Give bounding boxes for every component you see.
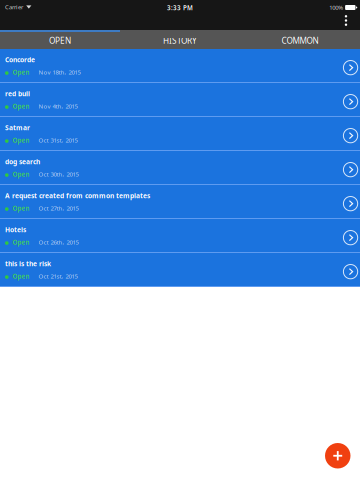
staticText: Concorde	[5, 55, 35, 64]
button[interactable]: Satmar	[0, 117, 360, 151]
staticText: 3:33 PM	[167, 3, 193, 12]
staticText: Open	[13, 102, 30, 110]
staticText: 100%	[329, 3, 343, 11]
staticText: Open	[13, 204, 30, 212]
staticText: red bull	[5, 89, 30, 98]
staticText: this is the risk	[5, 259, 51, 268]
button[interactable]: Concorde	[0, 49, 360, 83]
staticText: dog search	[5, 157, 40, 166]
button[interactable]: Add request	[325, 443, 350, 468]
staticText: OPEN	[49, 35, 71, 46]
staticText: A request created from common templates	[5, 191, 150, 200]
button[interactable]: COMMON	[240, 30, 360, 49]
staticText: Oct 26th, 2015	[39, 238, 79, 246]
staticText: Open	[13, 68, 30, 76]
button[interactable]: this is the risk	[0, 253, 360, 287]
staticText: Hotels	[5, 225, 26, 234]
staticText: COMMON	[281, 35, 318, 46]
staticText: Open	[13, 170, 30, 178]
button[interactable]: dog search	[0, 151, 360, 185]
staticText: Open	[13, 136, 30, 144]
staticText: Oct 30th, 2015	[39, 170, 79, 178]
staticText: Open	[13, 272, 30, 280]
staticText: Oct 21st, 2015	[39, 272, 78, 280]
staticText: Oct 27th, 2015	[39, 204, 79, 212]
button[interactable]: A request created from common templates	[0, 185, 360, 219]
button[interactable]: red bull	[0, 83, 360, 117]
staticText: Carrier	[5, 3, 23, 11]
button[interactable]: OPEN	[0, 30, 120, 49]
button[interactable]: HISTORY	[120, 30, 240, 49]
staticText: HISTORY	[163, 35, 197, 46]
staticText: Oct 31st, 2015	[39, 136, 78, 144]
button[interactable]: More options	[336, 13, 356, 28]
staticText: Nov 4th, 2015	[39, 102, 78, 110]
button[interactable]: Hotels	[0, 219, 360, 253]
staticText: Satmar	[5, 123, 30, 132]
staticText: Open	[13, 238, 30, 246]
staticText: Nov 18th, 2015	[39, 68, 81, 76]
